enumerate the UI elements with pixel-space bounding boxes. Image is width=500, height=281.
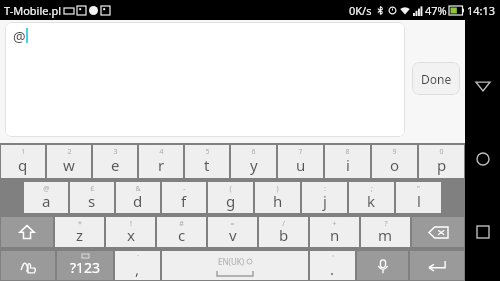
button[interactable]: 0 xyxy=(419,145,464,178)
staticText: a xyxy=(42,191,51,211)
staticText: £ xyxy=(90,184,95,194)
staticText: . xyxy=(330,259,335,279)
button[interactable]: = xyxy=(208,217,257,247)
staticText: f xyxy=(181,191,187,211)
button[interactable]: ) xyxy=(255,182,300,213)
staticText: # xyxy=(179,219,184,229)
button[interactable]: Shift xyxy=(1,217,53,247)
button[interactable]: 7 xyxy=(278,145,323,178)
button[interactable]: - xyxy=(162,182,206,213)
staticText: x xyxy=(127,225,135,245)
button[interactable]: 6 xyxy=(231,145,276,178)
staticText: u xyxy=(296,155,306,175)
staticText: 7 xyxy=(298,147,303,157)
button[interactable]: 1 xyxy=(1,145,45,178)
button[interactable]: Backspace xyxy=(412,217,464,247)
staticText: 0 xyxy=(439,147,444,157)
button[interactable]: Recents xyxy=(465,214,500,249)
button[interactable]: ( xyxy=(208,182,253,213)
button[interactable]: £ xyxy=(70,182,114,213)
button[interactable]: Done xyxy=(412,62,460,95)
staticText: ?123 xyxy=(70,258,101,277)
button[interactable]: Enter xyxy=(410,251,464,280)
staticText: l xyxy=(417,191,421,211)
staticText: i xyxy=(346,155,350,175)
staticText: & xyxy=(135,184,141,194)
staticText: y xyxy=(250,155,258,175)
staticText: w xyxy=(63,155,75,175)
staticText: z xyxy=(76,225,84,245)
button[interactable]: 8 xyxy=(325,145,370,178)
staticText: 1 xyxy=(21,147,26,157)
staticText: r xyxy=(158,155,165,175)
button[interactable]: Voice input xyxy=(357,251,408,280)
staticText: * xyxy=(78,219,82,229)
button[interactable]: ?123 xyxy=(57,251,113,280)
staticText: - xyxy=(183,184,186,194)
button[interactable]: 2 xyxy=(47,145,91,178)
staticText: ` xyxy=(137,253,139,263)
staticText: m xyxy=(378,225,393,245)
staticText: @ xyxy=(13,27,26,46)
staticText: n xyxy=(330,225,340,245)
staticText: 6 xyxy=(251,147,256,157)
button[interactable]: Back xyxy=(465,68,500,103)
staticText: @ xyxy=(43,184,50,194)
button[interactable]: Home xyxy=(465,141,500,176)
staticText: 9 xyxy=(392,147,397,157)
staticText: ; xyxy=(371,184,373,194)
staticText: e xyxy=(111,155,120,175)
staticText: s xyxy=(88,191,96,211)
button[interactable]: Handwriting xyxy=(1,251,55,280)
staticText: : xyxy=(324,184,326,194)
button[interactable]: @ xyxy=(24,182,68,213)
button[interactable]: 3 xyxy=(93,145,137,178)
staticText: o xyxy=(390,155,400,175)
button[interactable]: : xyxy=(302,182,347,213)
staticText: 0K/s xyxy=(349,3,372,18)
staticText: k xyxy=(367,191,376,211)
staticText: , xyxy=(135,259,140,279)
button[interactable]: ; xyxy=(349,182,394,213)
button[interactable]: & xyxy=(116,182,160,213)
button[interactable]: " xyxy=(396,182,441,213)
button[interactable]: + xyxy=(310,217,359,247)
staticText: ) xyxy=(276,184,279,194)
button[interactable]: @ xyxy=(5,22,405,137)
button[interactable]: * xyxy=(55,217,104,247)
button[interactable]: 4 xyxy=(139,145,183,178)
staticText: h xyxy=(273,191,283,211)
button[interactable]: Space xyxy=(162,251,308,280)
staticText: 4 xyxy=(159,147,164,157)
staticText: 8 xyxy=(345,147,350,157)
button[interactable]: ' xyxy=(310,251,355,280)
button[interactable]: ! xyxy=(106,217,155,247)
button[interactable]: ? xyxy=(361,217,410,247)
staticText: ! xyxy=(130,219,132,229)
staticText: c xyxy=(178,225,186,245)
staticText: g xyxy=(226,191,236,211)
button[interactable]: 5 xyxy=(185,145,229,178)
button[interactable]: # xyxy=(157,217,206,247)
staticText: " xyxy=(417,184,420,194)
staticText: 5 xyxy=(205,147,210,157)
staticText: j xyxy=(323,191,327,211)
button[interactable]: / xyxy=(259,217,308,247)
staticText: ( xyxy=(229,184,232,194)
button[interactable]: 9 xyxy=(372,145,417,178)
staticText: v xyxy=(229,225,237,245)
button[interactable]: ` xyxy=(115,251,160,280)
staticText: 14:13 xyxy=(467,3,496,18)
staticText: 2 xyxy=(67,147,72,157)
staticText: T-Mobile.pl xyxy=(4,3,62,18)
staticText: p xyxy=(437,155,447,175)
staticText: EN(UK) xyxy=(218,256,245,267)
staticText: d xyxy=(133,191,143,211)
staticText: b xyxy=(279,225,289,245)
staticText: 47% xyxy=(425,3,447,18)
staticText: / xyxy=(282,219,285,229)
staticText: ? xyxy=(384,219,388,229)
staticText: = xyxy=(230,219,235,229)
staticText: 3 xyxy=(113,147,118,157)
staticText: q xyxy=(18,155,28,175)
